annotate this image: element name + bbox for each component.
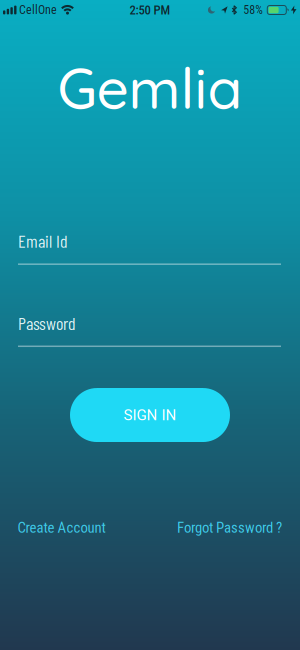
staticText: Create Account	[17, 519, 105, 536]
staticText: Gemlia	[57, 52, 242, 123]
staticText: Email Id	[18, 230, 68, 251]
staticText: 2:50 PM	[129, 2, 170, 17]
staticText: CellOne	[19, 3, 57, 17]
button[interactable]: Create Account	[17, 519, 105, 536]
staticText: SIGN IN	[123, 406, 176, 424]
staticText: Password	[18, 312, 76, 333]
button[interactable]: Email Id	[0, 230, 300, 265]
staticText: 58%	[243, 3, 263, 17]
button[interactable]: SIGN IN	[70, 388, 230, 442]
staticText: Forgot Password ?	[177, 519, 282, 536]
button[interactable]: Forgot Password ?	[177, 519, 282, 536]
button[interactable]: Password	[0, 312, 300, 347]
